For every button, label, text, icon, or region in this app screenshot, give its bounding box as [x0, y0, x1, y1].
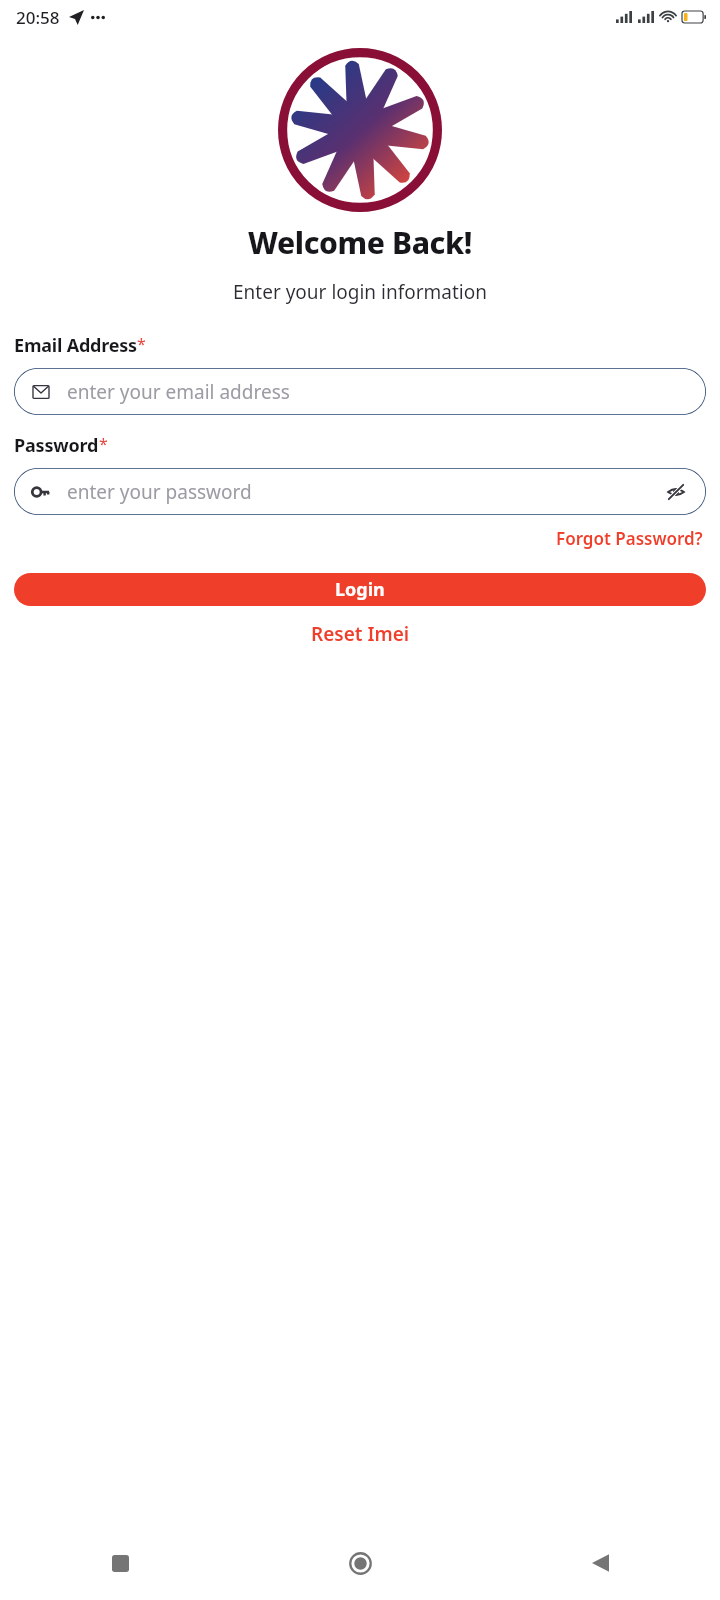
staticText: enter your email address — [67, 379, 290, 405]
button[interactable]: Login — [14, 573, 706, 606]
button[interactable]: Recents — [0, 1526, 240, 1600]
button[interactable]: Reset Imei — [301, 617, 420, 651]
button[interactable]: Toggle password visibility — [662, 478, 690, 506]
button[interactable]: Email address field — [14, 368, 706, 415]
staticText: * — [99, 433, 108, 455]
staticText: enter your password — [67, 479, 252, 505]
staticText: Welcome Back! — [248, 222, 472, 263]
button[interactable]: Home — [240, 1526, 480, 1600]
staticText: Email Address — [14, 333, 137, 358]
staticText: Password — [14, 433, 99, 458]
staticText: Enter your login information — [233, 279, 487, 305]
button[interactable]: Password field — [14, 468, 706, 515]
other: App logo — [278, 48, 442, 212]
staticText: Login — [335, 577, 385, 602]
staticText: * — [137, 333, 146, 355]
staticText: 20:58 — [16, 6, 60, 29]
button[interactable]: Forgot Password? — [553, 522, 706, 555]
staticText: Reset Imei — [311, 621, 410, 647]
staticText: Forgot Password? — [556, 527, 703, 550]
button[interactable]: Back — [480, 1526, 720, 1600]
